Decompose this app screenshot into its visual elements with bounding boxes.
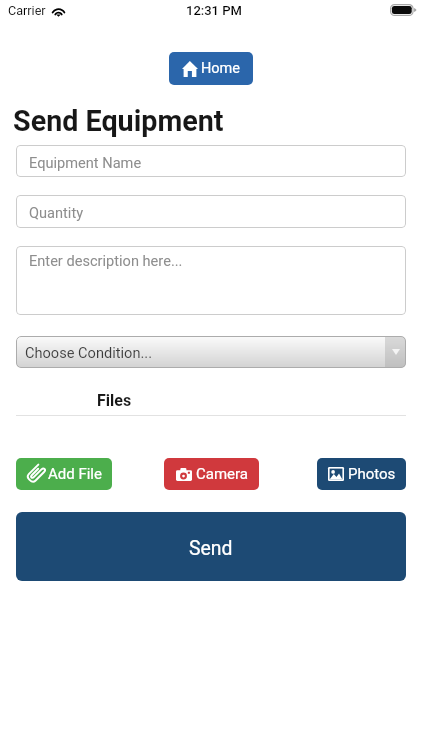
staticText: Camera [196, 465, 248, 483]
staticText: Enter description here... [29, 252, 183, 269]
button[interactable]: Add File [16, 458, 112, 490]
button[interactable]: Choose Condition... [16, 336, 406, 368]
staticText: 12:31 PM [186, 3, 242, 18]
staticText: Quantity [29, 204, 84, 221]
button[interactable]: Quantity [16, 195, 406, 228]
button[interactable]: Camera [164, 458, 259, 490]
button[interactable]: Equipment Name [16, 145, 406, 177]
staticText: Choose Condition... [25, 344, 152, 361]
staticText: Add File [48, 465, 102, 483]
staticText: Send Equipment [13, 104, 224, 138]
staticText: Equipment Name [29, 154, 142, 171]
button[interactable]: Send [16, 512, 406, 581]
button[interactable]: Photos [317, 458, 406, 490]
button[interactable]: Enter description here... [16, 246, 406, 315]
staticText: Files [97, 391, 132, 410]
staticText: Photos [348, 465, 396, 483]
staticText: Carrier [8, 3, 46, 18]
staticText: Home [201, 60, 241, 77]
button[interactable]: Home [169, 52, 253, 85]
staticText: Send [189, 537, 233, 560]
